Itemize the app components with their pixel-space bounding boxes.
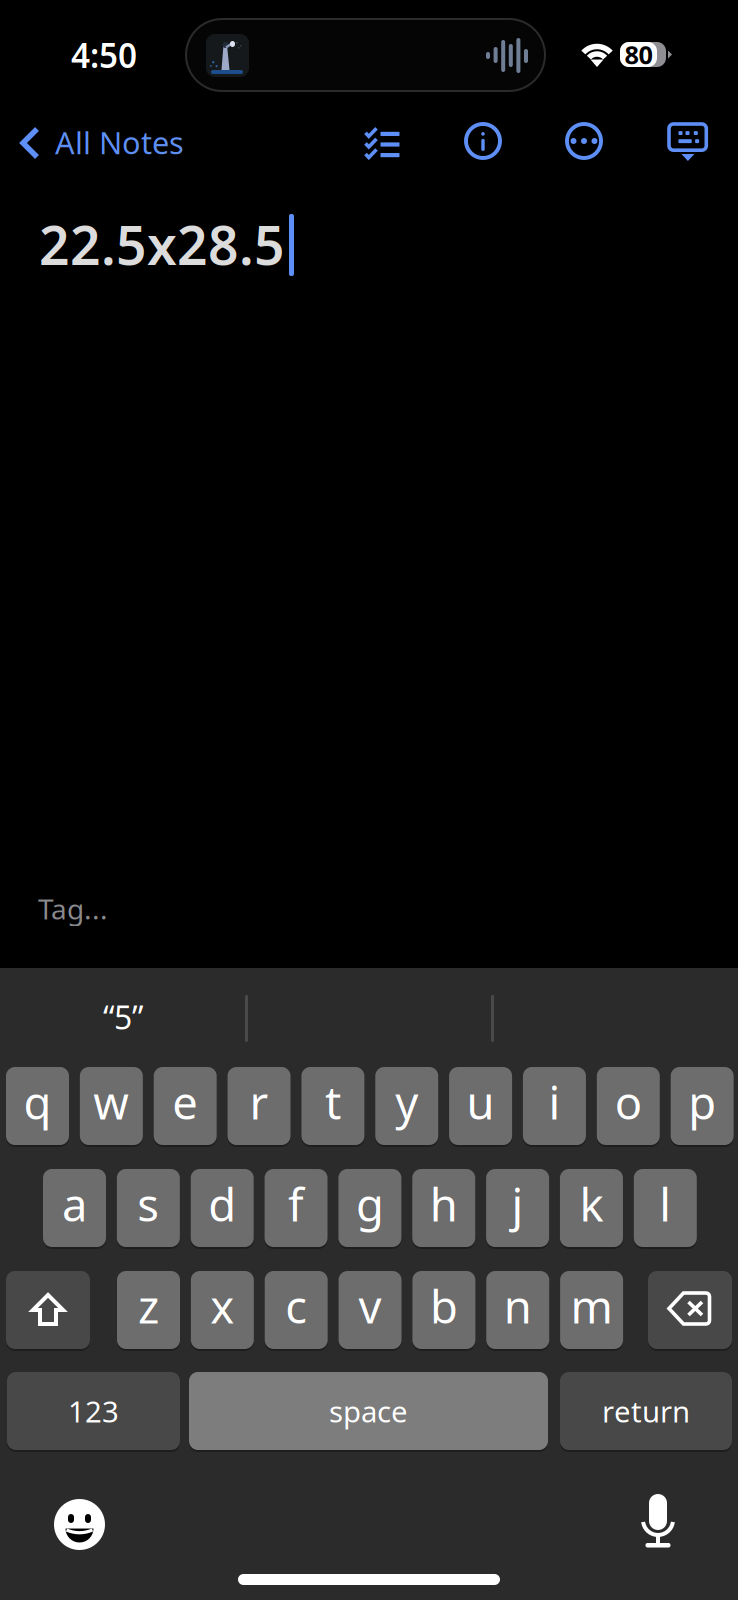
staticText: o — [615, 1072, 642, 1132]
button[interactable]: i — [523, 1067, 586, 1145]
staticText: f — [288, 1174, 304, 1234]
staticText: z — [138, 1276, 159, 1336]
button[interactable]: h — [412, 1169, 475, 1247]
staticText: n — [504, 1276, 532, 1336]
button[interactable]: m — [560, 1271, 623, 1349]
staticText: t — [325, 1072, 341, 1132]
staticText: w — [93, 1072, 129, 1132]
button[interactable]: All Notes — [0, 110, 190, 174]
button[interactable]: n — [486, 1271, 549, 1349]
button[interactable]: r — [227, 1067, 290, 1145]
button[interactable]: a — [43, 1169, 106, 1247]
staticText: “5” — [103, 996, 143, 1038]
staticText: q — [23, 1072, 51, 1132]
staticText: g — [356, 1174, 384, 1234]
staticText: Tag... — [38, 890, 108, 927]
button[interactable]: z — [117, 1271, 180, 1349]
staticText: l — [659, 1174, 671, 1234]
staticText: 4:50 — [71, 33, 137, 77]
staticText: r — [249, 1072, 268, 1132]
button[interactable]: l — [634, 1169, 697, 1247]
staticText: 80 — [624, 38, 652, 71]
button[interactable]: Dictate — [640, 1494, 684, 1550]
button[interactable]: c — [265, 1271, 328, 1349]
button[interactable]: u — [449, 1067, 512, 1145]
button[interactable]: j — [486, 1169, 549, 1247]
button[interactable]: v — [338, 1271, 401, 1349]
staticText: y — [395, 1072, 418, 1132]
staticText: e — [172, 1072, 198, 1132]
button[interactable]: e — [154, 1067, 217, 1145]
staticText: All Notes — [55, 122, 184, 163]
button[interactable]: Shift — [6, 1271, 90, 1349]
button[interactable]: t — [301, 1067, 364, 1145]
button[interactable]: w — [80, 1067, 143, 1145]
button[interactable]: d — [191, 1169, 254, 1247]
staticText: u — [467, 1072, 495, 1132]
button[interactable]: Checklist — [357, 113, 421, 177]
button[interactable]: b — [412, 1271, 475, 1349]
button[interactable]: p — [671, 1067, 734, 1145]
staticText: s — [137, 1174, 159, 1234]
button[interactable]: More options — [552, 109, 616, 173]
staticText: j — [512, 1174, 524, 1234]
staticText: v — [358, 1276, 381, 1336]
staticText: 22.5x28.5 — [39, 209, 285, 280]
staticText: space — [329, 1391, 408, 1430]
staticText: i — [548, 1072, 560, 1132]
staticText: 123 — [68, 1391, 119, 1430]
button[interactable]: q — [6, 1067, 69, 1145]
staticText: c — [285, 1276, 307, 1336]
staticText: m — [571, 1276, 613, 1336]
button[interactable]: “5” — [1, 968, 245, 1058]
staticText: h — [430, 1174, 458, 1234]
staticText: a — [62, 1174, 87, 1234]
button[interactable]: g — [338, 1169, 401, 1247]
button[interactable]: k — [560, 1169, 623, 1247]
staticText: k — [579, 1174, 603, 1234]
button[interactable]: Delete — [648, 1271, 732, 1349]
staticText: p — [688, 1072, 716, 1132]
button[interactable]: Hide keyboard — [668, 123, 716, 171]
button[interactable]: Emoji — [54, 1499, 105, 1550]
button[interactable]: space — [189, 1372, 548, 1450]
button[interactable]: x — [191, 1271, 254, 1349]
staticText: b — [430, 1276, 458, 1336]
staticText: d — [208, 1174, 236, 1234]
button[interactable]: return — [560, 1372, 732, 1450]
button[interactable]: Note information — [451, 109, 515, 173]
button[interactable]: f — [264, 1169, 327, 1247]
button[interactable]: 123 — [7, 1372, 180, 1450]
staticText: x — [210, 1276, 234, 1336]
button[interactable]: y — [375, 1067, 438, 1145]
staticText: return — [602, 1391, 690, 1430]
button[interactable]: o — [597, 1067, 660, 1145]
button[interactable]: s — [117, 1169, 180, 1247]
